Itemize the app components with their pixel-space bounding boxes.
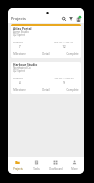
staticText: Projects <box>11 16 26 21</box>
staticText: 4 <box>19 81 21 85</box>
staticText: Complete <box>66 52 79 56</box>
staticText: Harbour Studio <box>13 63 38 67</box>
button[interactable]: Detail <box>42 86 50 93</box>
staticText: Progress <box>13 76 23 79</box>
staticText: Atlas Portal <box>13 27 32 31</box>
staticText: Complete <box>66 88 79 92</box>
button[interactable]: Milestone <box>13 50 26 57</box>
staticText: Milestone <box>13 88 26 92</box>
staticText: Northwind Co <box>13 66 31 70</box>
staticText: Milestone <box>13 52 26 56</box>
staticText: Detail <box>42 88 50 92</box>
button[interactable]: More <box>65 157 84 174</box>
staticText: Mar 02 — Apr 18 <box>54 40 73 43</box>
staticText: Apr 08 — May 02 <box>54 76 74 79</box>
staticText: 7 <box>19 45 21 49</box>
staticText: Dashboard <box>49 167 63 171</box>
staticText: Acme Studio <box>13 30 29 34</box>
button[interactable]: Milestone <box>13 86 26 93</box>
button[interactable]: Filter <box>67 15 74 22</box>
button[interactable]: Profile <box>74 15 82 23</box>
staticText: Detail <box>42 52 50 56</box>
button[interactable]: Tasks <box>27 157 46 174</box>
button[interactable]: Harbour Studio <box>11 62 81 94</box>
staticText: Projects <box>13 167 23 171</box>
staticText: Q2 Sprint <box>13 69 25 73</box>
button[interactable]: Projects <box>8 157 27 174</box>
staticText: Tasks <box>33 167 40 171</box>
button[interactable]: Search <box>60 15 67 22</box>
button[interactable]: Dashboard <box>46 157 65 174</box>
staticText: 12 <box>62 45 66 49</box>
button[interactable]: Detail <box>42 50 50 57</box>
button[interactable]: Complete <box>66 86 79 93</box>
button[interactable]: Atlas Portal <box>11 24 81 58</box>
staticText: Q2 Sprint <box>13 33 25 37</box>
staticText: 9 <box>63 81 65 85</box>
staticText: More <box>71 167 78 171</box>
button[interactable]: Complete <box>66 50 79 57</box>
staticText: Progress <box>13 40 23 43</box>
